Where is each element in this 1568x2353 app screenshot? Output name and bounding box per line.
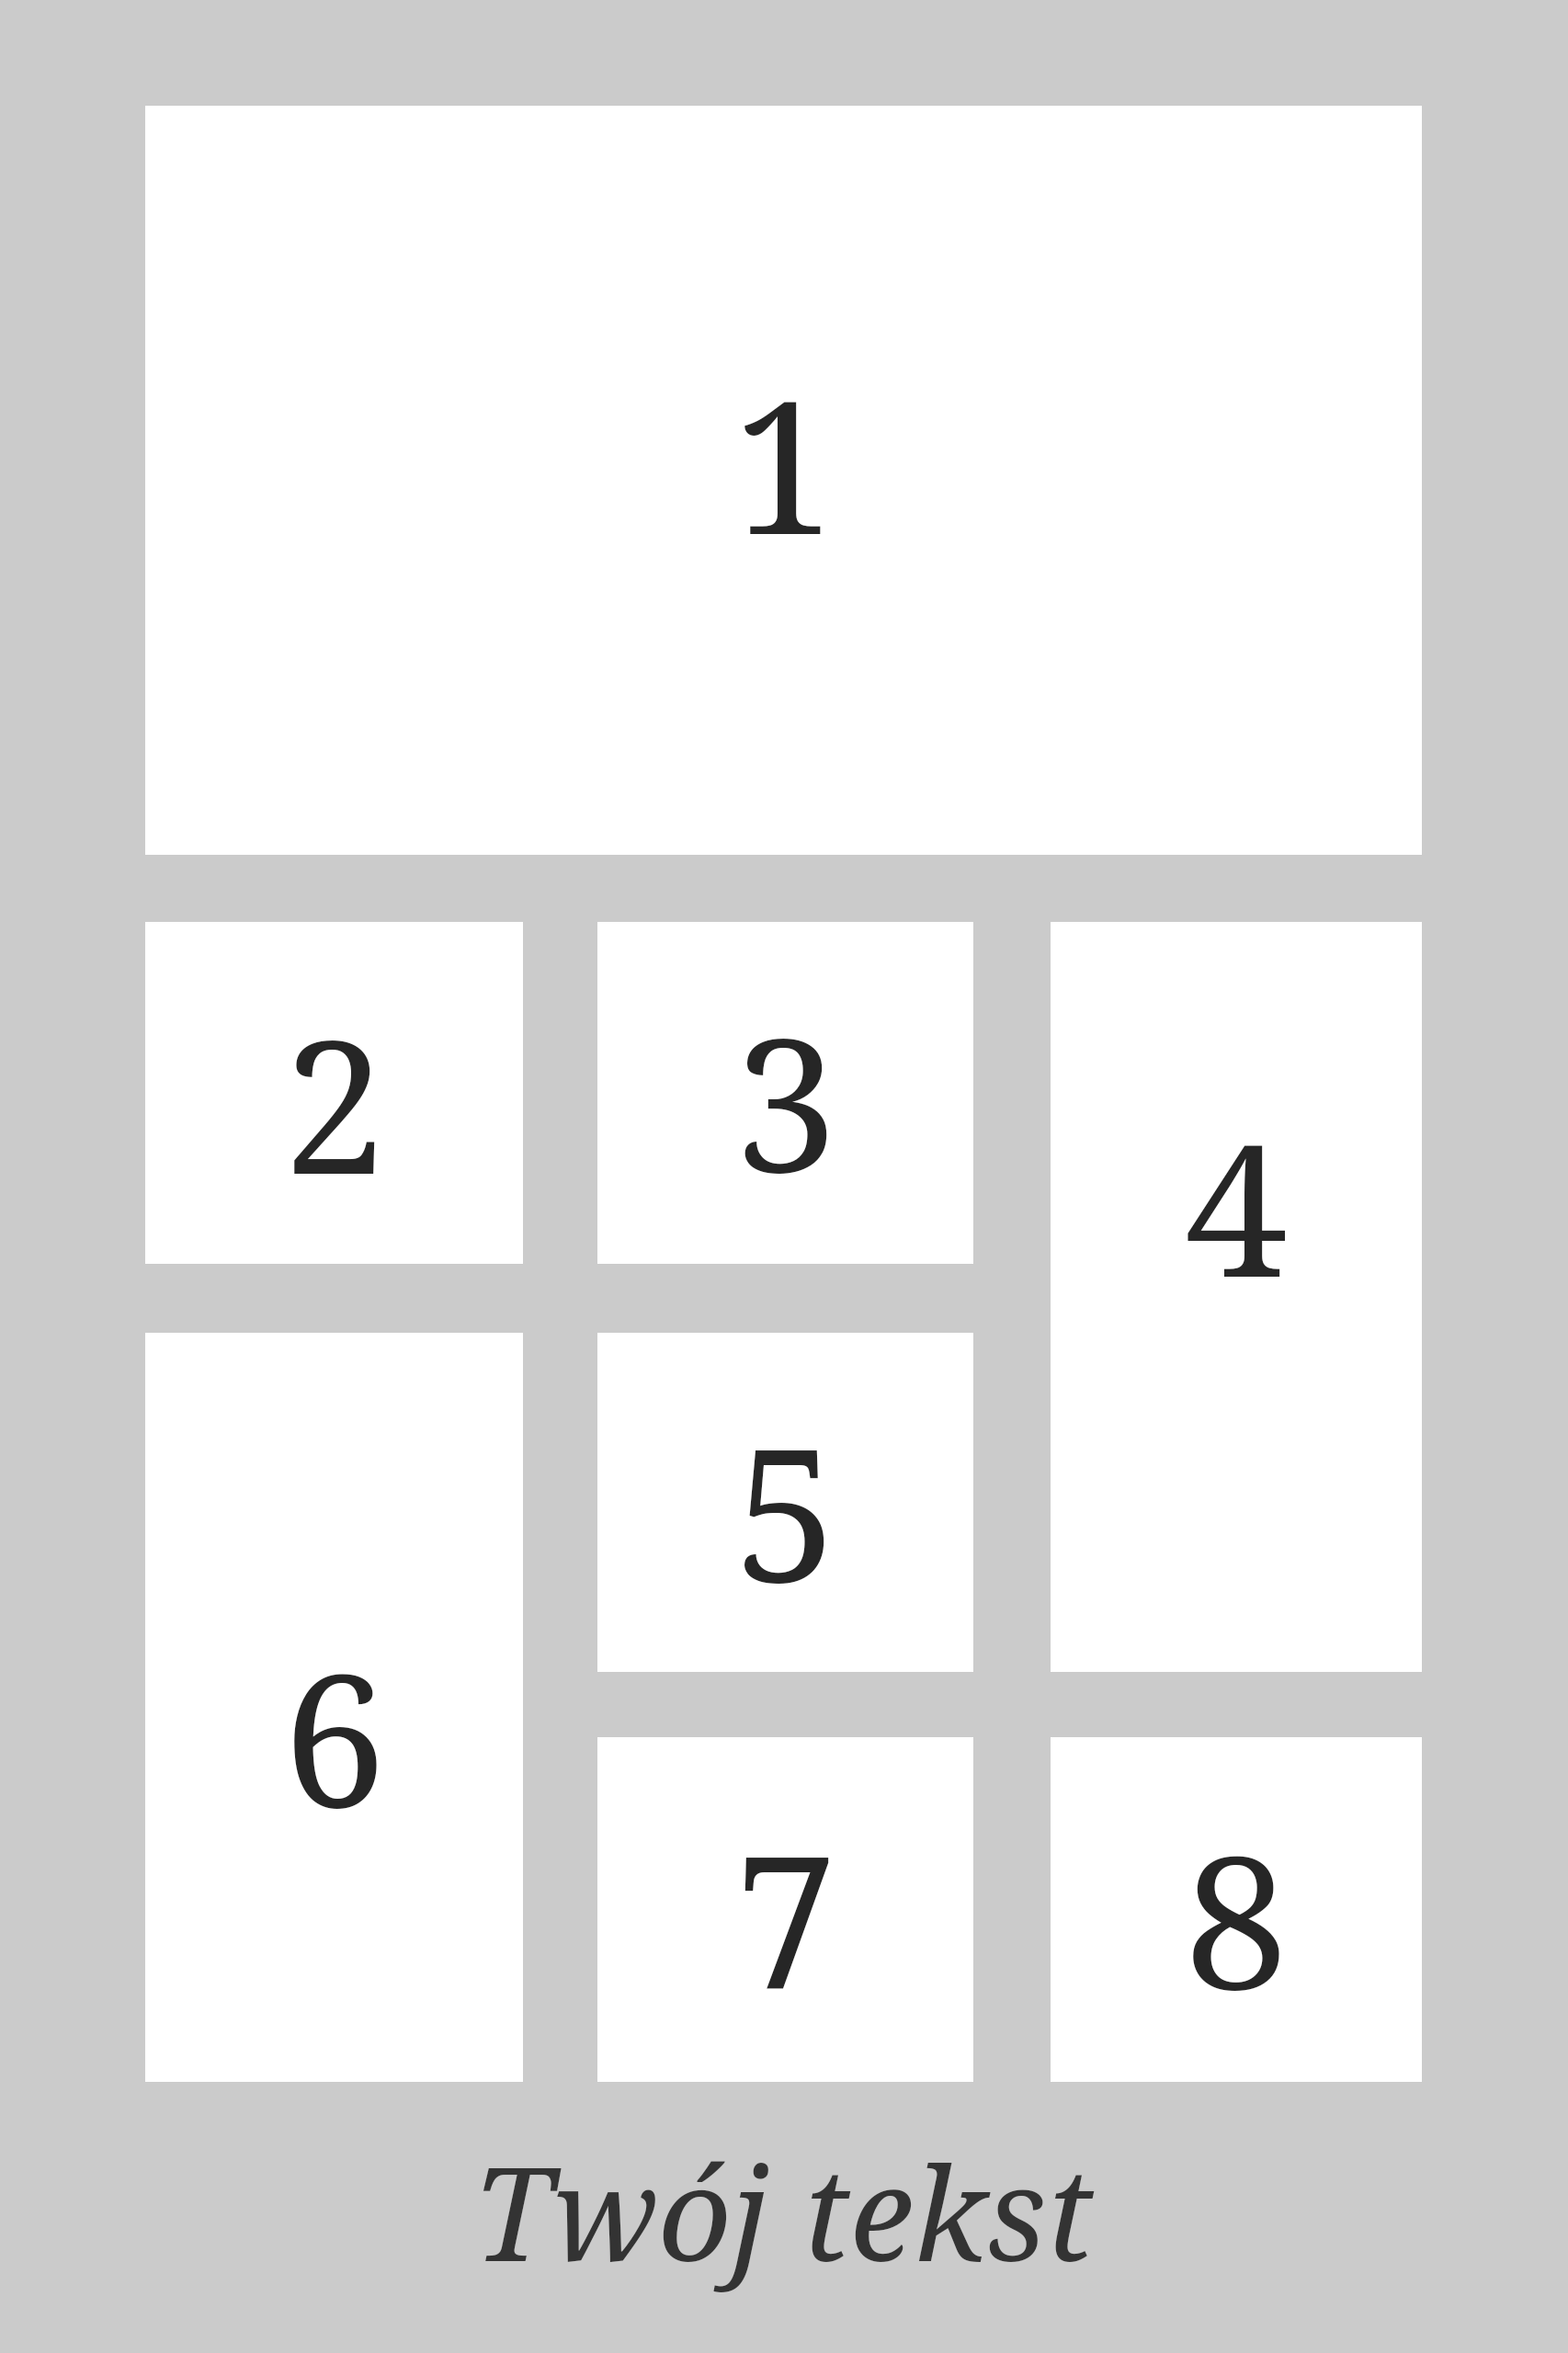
button[interactable]: 8 — [1051, 1737, 1422, 2082]
button[interactable]: 1 — [145, 106, 1422, 855]
staticText: Twój tekst — [473, 2123, 1094, 2299]
button[interactable]: 2 — [145, 922, 523, 1264]
staticText: 2 — [283, 977, 386, 1227]
button[interactable]: 6 — [145, 1333, 523, 2082]
button[interactable]: 4 — [1051, 922, 1422, 1672]
staticText: 6 — [283, 1610, 386, 1860]
staticText: 7 — [734, 1792, 837, 2042]
staticText: 8 — [1185, 1792, 1288, 2042]
staticText: 4 — [1185, 1080, 1288, 1330]
button[interactable]: 5 — [597, 1333, 973, 1672]
staticText: 5 — [734, 1385, 837, 1635]
button[interactable]: 3 — [597, 922, 973, 1264]
staticText: 3 — [734, 975, 837, 1225]
staticText: 1 — [733, 337, 835, 587]
button[interactable]: 7 — [597, 1737, 973, 2082]
button[interactable]: Twój tekst — [145, 2105, 1422, 2316]
